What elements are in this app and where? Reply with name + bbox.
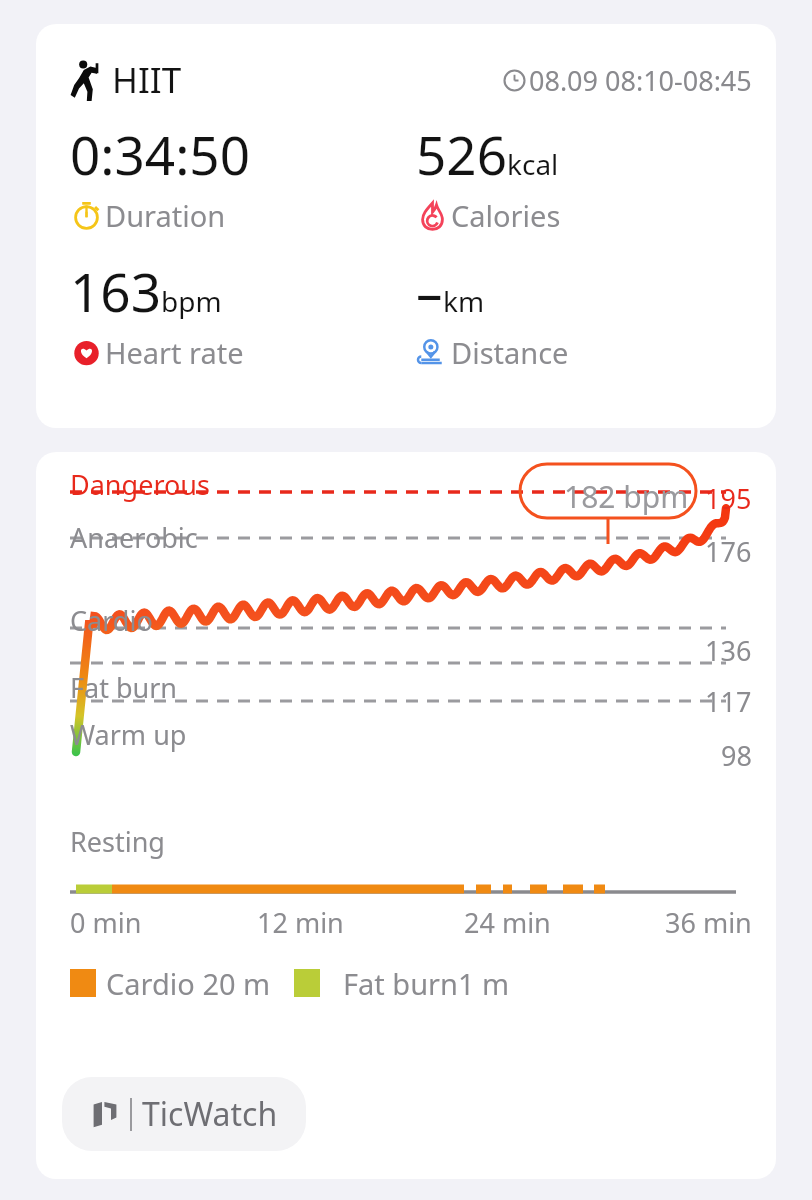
staticText: bpm [161,282,222,320]
staticText: Resting [70,823,165,860]
staticText: 195 [705,480,752,517]
staticText: Cardio 20 m [106,964,271,1003]
staticText: 176 [705,533,752,570]
button[interactable]: – [416,255,752,372]
staticText: kcal [507,145,559,183]
staticText: Fat burn [70,669,178,706]
staticText: Anaerobic [70,519,198,556]
staticText: 24 min [464,904,551,941]
button[interactable]: 163 [70,255,416,372]
staticText: km [443,282,485,320]
button[interactable]: 0:34:50 [70,118,416,235]
staticText: Dangerous [70,466,210,503]
staticText: 136 [705,632,752,669]
staticText: Distance [451,333,569,372]
staticText: 36 min [665,904,752,941]
button[interactable]: HIIT [36,24,776,428]
staticText: 526 [416,118,507,190]
staticText: Cardio [70,602,153,639]
staticText: HIIT [112,56,182,104]
staticText: 117 [705,683,752,720]
staticText: Fat burn1 m [343,964,510,1003]
staticText: – [416,255,443,327]
button[interactable]: Dangerous [36,452,776,1179]
staticText: Duration [105,196,226,235]
staticText: 163 [70,255,161,327]
staticText: 182 bpm [564,476,689,517]
button[interactable]: TicWatch [62,1077,306,1151]
staticText: TicWatch [142,1092,278,1136]
staticText: 08.09 08:10-08:45 [529,62,752,99]
staticText: Warm up [70,716,187,753]
staticText: Calories [451,196,561,235]
staticText: 0 min [70,904,142,941]
staticText: 98 [721,737,752,774]
staticText: 12 min [257,904,344,941]
button[interactable]: 526 [416,118,752,235]
staticText: Heart rate [105,333,244,372]
staticText: 0:34:50 [70,118,250,190]
